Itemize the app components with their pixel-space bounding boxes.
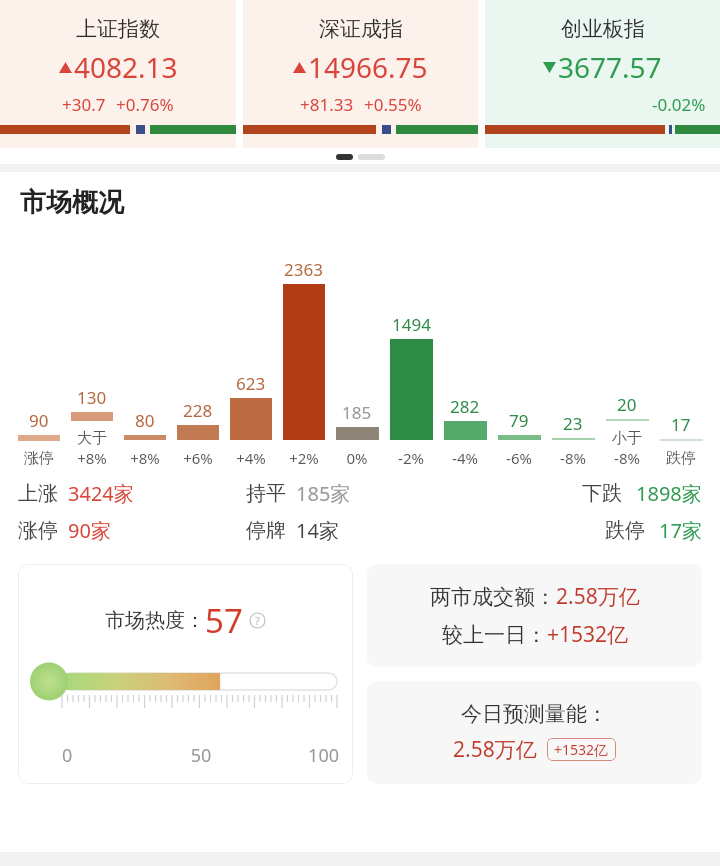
staticText: 130 — [77, 386, 107, 409]
staticText: 下跌 — [582, 481, 622, 506]
staticText: ? — [255, 613, 260, 628]
staticText: 涨停 — [24, 449, 54, 468]
staticText: 跌停 — [666, 449, 696, 468]
button[interactable]: 帮助 — [249, 612, 266, 629]
staticText: 1898家 — [636, 480, 702, 507]
staticText: 3424家 — [68, 480, 134, 507]
staticText: 上涨 — [18, 481, 58, 506]
staticText: 2.58万亿 — [556, 582, 640, 611]
staticText: +30.7 — [62, 93, 106, 116]
staticText: +0.76% — [116, 93, 174, 116]
staticText: 57 — [205, 598, 243, 643]
button[interactable]: 今日预测量能： — [367, 681, 702, 784]
staticText: +1532亿 — [554, 740, 609, 759]
staticText: 4082.13 — [74, 48, 178, 86]
button[interactable]: 深证成指 — [243, 0, 478, 148]
staticText: -6% — [506, 448, 532, 468]
staticText: 3677.57 — [558, 48, 662, 86]
staticText: 17家 — [659, 517, 702, 544]
staticText: 深证成指 — [319, 16, 403, 42]
staticText: 90 — [29, 409, 49, 432]
staticText: -0.02% — [652, 93, 706, 116]
staticText: 市场概况 — [20, 186, 124, 219]
staticText: 185 — [342, 401, 372, 424]
staticText: 23 — [563, 412, 583, 435]
staticText: +8% — [130, 448, 160, 468]
staticText: 1494 — [392, 313, 431, 336]
staticText: 79 — [509, 409, 529, 432]
staticText: 创业板指 — [561, 16, 645, 42]
staticText: 17 — [671, 413, 691, 436]
staticText: +4% — [236, 448, 266, 468]
button[interactable]: 两市成交额： — [367, 564, 702, 667]
staticText: 14家 — [296, 517, 339, 544]
staticText: 两市成交额： — [430, 584, 556, 610]
staticText: 跌停 — [605, 518, 645, 543]
staticText: +8% — [77, 448, 107, 468]
staticText: +6% — [183, 448, 213, 468]
staticText: 100 — [247, 743, 339, 768]
staticText: 0% — [346, 448, 368, 468]
staticText: -4% — [452, 448, 478, 468]
staticText: 市场热度： — [105, 608, 205, 633]
staticText: 停牌 — [246, 518, 286, 543]
staticText: 0 — [62, 743, 155, 768]
staticText: 14966.75 — [308, 48, 428, 86]
staticText: 大于 — [77, 429, 107, 448]
staticText: -2% — [398, 448, 424, 468]
staticText: 228 — [183, 399, 213, 422]
staticText: 涨停 — [18, 518, 58, 543]
staticText: 持平 — [246, 481, 286, 506]
staticText: 小于 — [612, 429, 642, 448]
staticText: -8% — [614, 448, 640, 468]
staticText: +1532亿 — [547, 620, 629, 649]
staticText: 623 — [236, 372, 266, 395]
staticText: 20 — [617, 393, 637, 416]
staticText: 今日预测量能： — [461, 701, 608, 727]
staticText: 50 — [155, 743, 247, 768]
button[interactable]: 市场热度： — [18, 564, 353, 784]
button[interactable]: 上证指数 — [0, 0, 236, 148]
staticText: 185家 — [296, 480, 351, 507]
staticText: 上证指数 — [76, 16, 160, 42]
staticText: +2% — [289, 448, 319, 468]
staticText: -8% — [560, 448, 586, 468]
staticText: 2363 — [284, 258, 323, 281]
staticText: 80 — [135, 409, 155, 432]
staticText: +81.33 — [300, 93, 354, 116]
button[interactable]: 创业板指 — [485, 0, 720, 148]
staticText: 90家 — [68, 517, 111, 544]
staticText: 282 — [450, 395, 480, 418]
staticText: 2.58万亿 — [453, 735, 537, 764]
staticText: 较上一日： — [442, 622, 547, 648]
staticText: +0.55% — [364, 93, 422, 116]
